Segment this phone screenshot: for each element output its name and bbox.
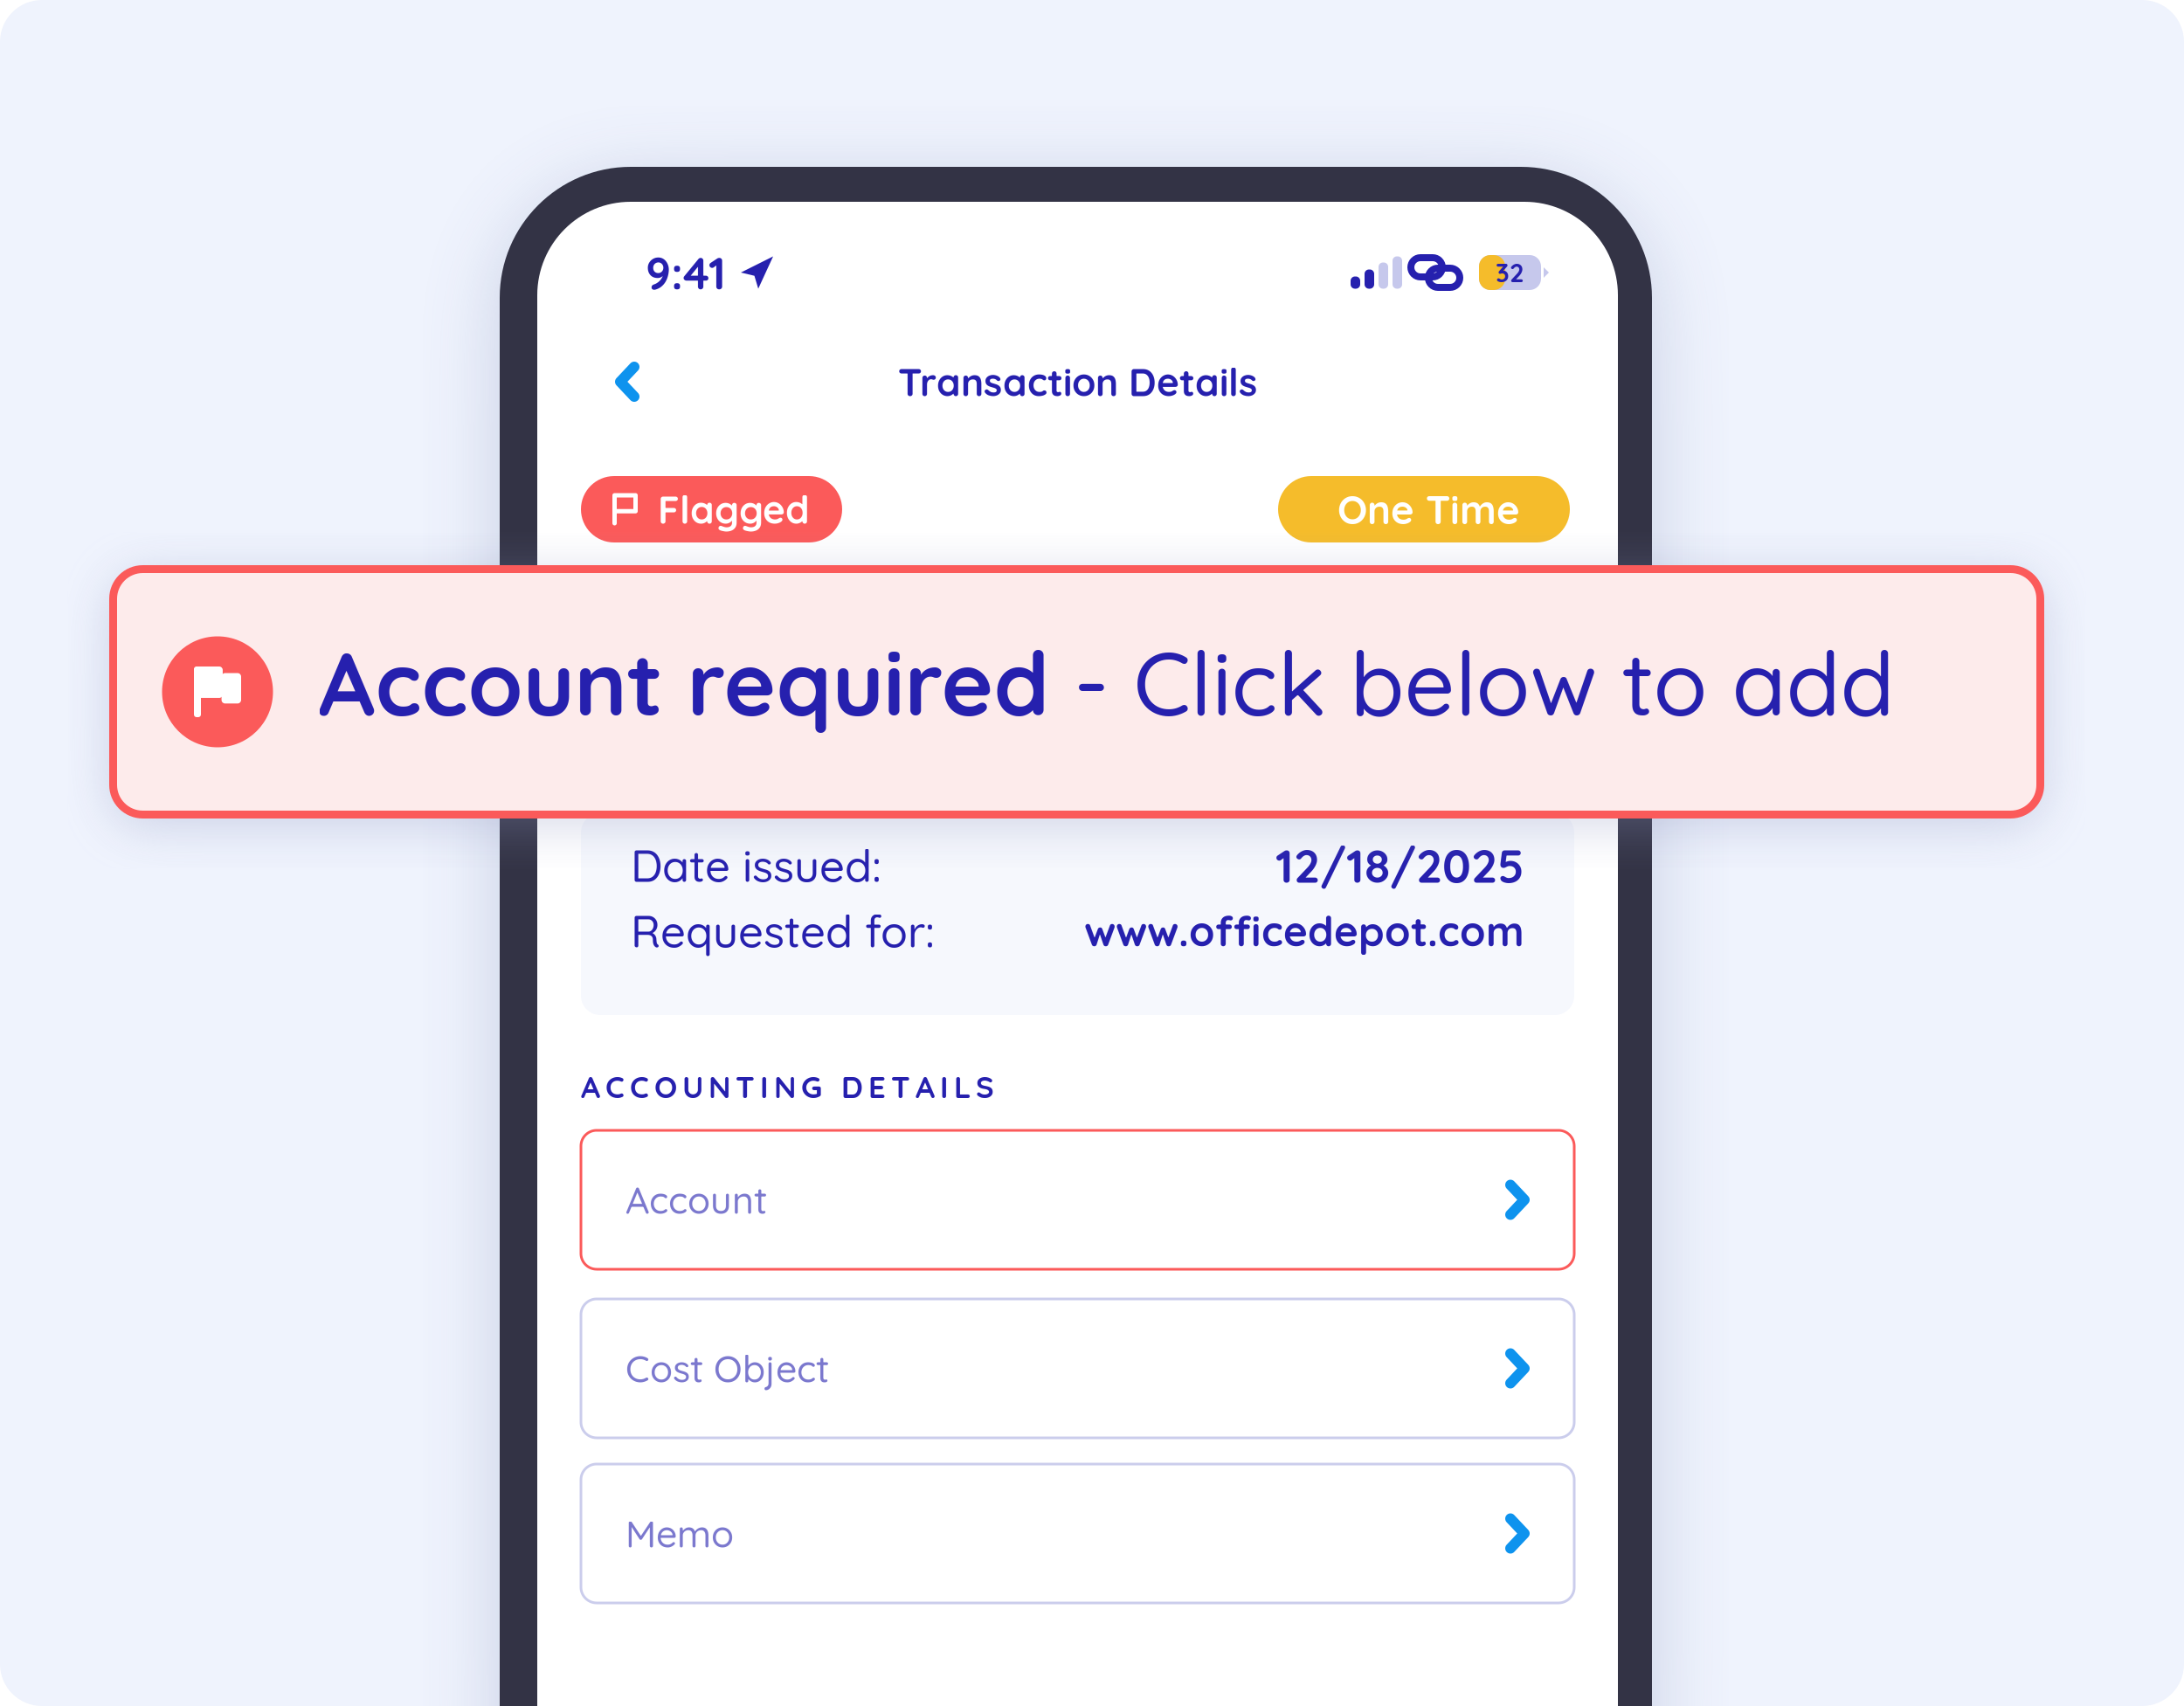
staticText: A C C O U N T I N G D E T A I L S — [581, 1068, 994, 1106]
staticText: Account — [625, 1176, 767, 1223]
button[interactable]: Flagged — [581, 476, 842, 542]
staticText: www.officedepot.com — [1084, 905, 1524, 957]
button[interactable]: Account — [581, 1130, 1574, 1269]
staticText: Cost Object — [625, 1345, 829, 1392]
staticText: Date issued: — [631, 838, 881, 893]
staticText: Transaction Details — [898, 358, 1257, 406]
button[interactable]: Memo — [581, 1464, 1574, 1603]
staticText: Requested for: — [631, 903, 935, 958]
staticText: One Time — [1337, 485, 1520, 534]
staticText: 32 — [1496, 257, 1524, 289]
button[interactable]: One Time — [1278, 476, 1570, 542]
button[interactable]: Cost Object — [581, 1299, 1574, 1438]
staticText: 9:41 — [646, 245, 726, 301]
button[interactable]: Back — [588, 342, 667, 421]
staticText: Flagged — [658, 485, 810, 533]
staticText: Account required — [318, 627, 1050, 738]
staticText: Memo — [625, 1510, 734, 1557]
staticText: - Click below to add — [1050, 627, 1894, 738]
staticText: 12/18/2025 — [1275, 836, 1524, 894]
